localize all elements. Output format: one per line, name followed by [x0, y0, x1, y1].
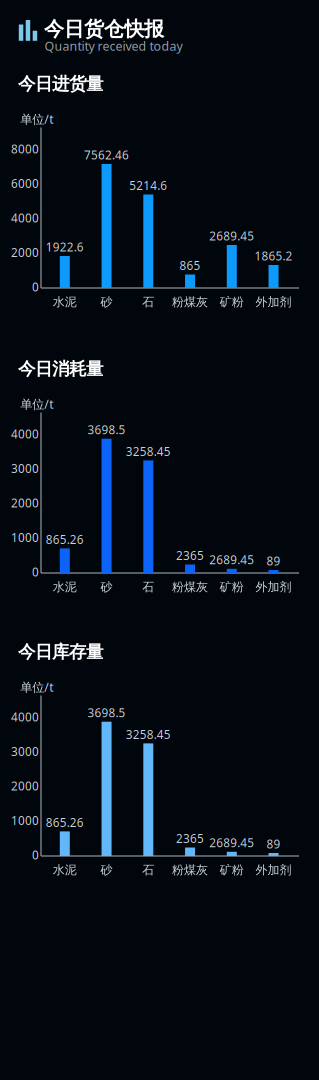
staticText: 外加剂 — [256, 579, 292, 594]
staticText: 单位/t — [20, 396, 53, 412]
staticText: 865.26 — [46, 531, 84, 547]
staticText: 4000 — [11, 210, 39, 226]
staticText: 砂 — [100, 579, 112, 594]
staticText: 2689.45 — [209, 228, 254, 244]
staticText: 865.26 — [46, 814, 84, 830]
staticText: 3698.5 — [87, 705, 125, 721]
staticText: 3258.45 — [126, 726, 171, 742]
staticText: 2689.45 — [209, 552, 254, 568]
staticText: 水泥 — [53, 294, 77, 309]
staticText: 0 — [32, 847, 39, 863]
staticText: 1000 — [11, 529, 39, 545]
staticText: 砂 — [100, 862, 112, 877]
staticText: 0 — [32, 564, 39, 580]
staticText: 石 — [142, 294, 154, 309]
staticText: 今日进货量 — [18, 73, 103, 95]
staticText: 外加剂 — [256, 862, 292, 877]
staticText: 水泥 — [53, 862, 77, 877]
staticText: 4000 — [11, 426, 39, 442]
staticText: 粉煤灰 — [172, 579, 208, 594]
staticText: 89 — [267, 836, 281, 852]
staticText: 水泥 — [53, 579, 77, 594]
staticText: 今日库存量 — [18, 641, 103, 663]
staticText: 4000 — [11, 709, 39, 725]
staticText: 粉煤灰 — [172, 862, 208, 877]
staticText: 矿粉 — [220, 862, 244, 877]
staticText: 7562.46 — [84, 147, 129, 163]
staticText: 单位/t — [20, 679, 53, 695]
staticText: 3000 — [11, 460, 39, 476]
staticText: 石 — [142, 862, 154, 877]
staticText: 0 — [32, 279, 39, 295]
staticText: 矿粉 — [220, 579, 244, 594]
staticText: 89 — [267, 553, 281, 569]
staticText: 1922.6 — [46, 239, 84, 255]
staticText: Quantity received today — [45, 38, 183, 54]
staticText: 5214.6 — [129, 177, 167, 193]
staticText: 砂 — [100, 294, 112, 309]
staticText: 2000 — [11, 495, 39, 511]
staticText: 2000 — [11, 778, 39, 794]
staticText: 2000 — [11, 244, 39, 260]
staticText: 矿粉 — [220, 294, 244, 309]
staticText: 865 — [180, 257, 201, 273]
staticText: 3258.45 — [126, 443, 171, 459]
staticText: 6000 — [11, 175, 39, 191]
staticText: 单位/t — [20, 111, 53, 127]
staticText: 1865.2 — [255, 248, 293, 264]
staticText: 今日消耗量 — [18, 358, 103, 380]
staticText: 今日货仓快报 — [44, 17, 164, 42]
staticText: 3000 — [11, 743, 39, 759]
staticText: 2365 — [176, 547, 204, 563]
staticText: 2365 — [176, 830, 204, 846]
staticText: 粉煤灰 — [172, 294, 208, 309]
staticText: 1000 — [11, 812, 39, 828]
staticText: 8000 — [11, 141, 39, 157]
staticText: 外加剂 — [256, 294, 292, 309]
staticText: 2689.45 — [209, 835, 254, 851]
staticText: 石 — [142, 579, 154, 594]
staticText: 3698.5 — [87, 422, 125, 438]
